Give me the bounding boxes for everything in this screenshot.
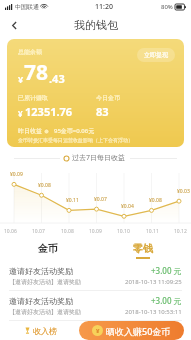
staticText: 10.09 (89, 228, 102, 235)
staticText: ¥ (18, 108, 23, 119)
staticText: ¥0.08 (149, 197, 162, 204)
staticText: 80% (161, 3, 173, 11)
staticText: 立即提现 (144, 51, 168, 59)
button[interactable]: 零钱 (95, 239, 191, 261)
staticText: ¥0.09 (10, 171, 23, 178)
button[interactable]: 金币 (0, 239, 95, 261)
staticText: 零钱 (133, 242, 153, 255)
staticText: 10.08 (61, 228, 74, 235)
staticText: 2018-10-13 11:09:25 (125, 278, 182, 286)
staticText: ¥0.04 (121, 203, 134, 210)
staticText: 总能余额 (18, 48, 42, 56)
button[interactable]: 邀请好友活动奖励 (0, 291, 191, 321)
staticText: 11:20 (95, 2, 113, 12)
staticText: 今日金币 (96, 94, 120, 102)
staticText: 中国联通 (15, 3, 39, 11)
staticText: 晒收入赚50金币 (106, 325, 171, 337)
staticText: 10.12 (174, 228, 187, 235)
staticText: 邀请好友活动奖励 (9, 296, 73, 306)
staticText: 83 (96, 104, 109, 119)
staticText: 10.10 (117, 228, 130, 235)
staticText: ¥0.08 (38, 182, 51, 189)
staticText: 我的钱包 (74, 18, 118, 32)
staticText: 10.11 (146, 228, 159, 235)
staticText: 10.06 (4, 228, 17, 235)
staticText: 2018-10-13 10:53:11 (125, 308, 182, 316)
staticText: +3.00 元 (151, 295, 182, 306)
staticText: ¥0.11 (66, 197, 79, 204)
staticText: 过去7日每日收益 (72, 153, 126, 163)
staticText: .43 (49, 71, 65, 86)
staticText: 邀请好友活动奖励 (9, 266, 73, 276)
staticText: ¥0.07 (94, 196, 107, 203)
staticText: 95金币=0.06元 (54, 127, 95, 135)
button[interactable]: 收入榜 (7, 321, 73, 340)
staticText: 昨日收益 (18, 127, 42, 135)
button[interactable]: 邀请好友活动奖励 (0, 261, 191, 291)
staticText: 金币转换汇率受每日运营收益影响（上下会有浮动） (18, 137, 133, 143)
staticText: 10.07 (32, 228, 45, 235)
staticText: ¥0.03 (177, 188, 190, 195)
staticText: 12351.76 (25, 104, 73, 119)
button[interactable]: 立即提现 (137, 48, 175, 62)
staticText: 收入榜 (33, 326, 57, 336)
staticText: 金币 (38, 242, 58, 255)
staticText: 已累计赚取 (18, 94, 48, 102)
staticText: 【邀请好友活动】邀请奖励 (9, 308, 81, 316)
staticText: 78 (24, 58, 49, 87)
staticText: 【邀请好友活动】邀请奖励 (9, 278, 81, 286)
staticText: +3.00 元 (151, 265, 182, 276)
button[interactable]: Back (4, 15, 24, 35)
staticText: ¥ (96, 327, 100, 335)
staticText: ¥ (18, 73, 24, 85)
button[interactable]: ¥ (79, 321, 184, 340)
